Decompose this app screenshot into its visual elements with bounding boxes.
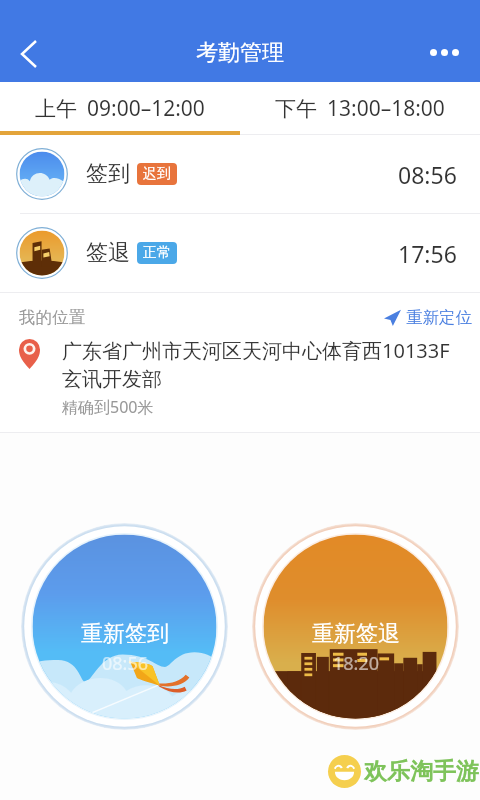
- staticText: 我的位置: [19, 307, 85, 328]
- staticText: 重新签到: [81, 620, 169, 648]
- staticText: 08:56: [398, 159, 457, 190]
- staticText: 重新定位: [406, 307, 472, 328]
- staticText: 正常: [143, 244, 171, 262]
- staticText: 迟到: [143, 165, 171, 183]
- staticText: 广东省广州市天河区天河中心体育西10133F 玄讯开发部: [62, 337, 450, 392]
- button[interactable]: 签退: [0, 214, 480, 292]
- staticText: 签退: [86, 239, 130, 267]
- staticText: 13:00–18:00: [327, 94, 445, 123]
- staticText: 上午: [35, 96, 77, 122]
- button[interactable]: 下午: [240, 82, 480, 135]
- button[interactable]: 上午: [0, 82, 240, 135]
- staticText: 重新签退: [312, 620, 400, 648]
- button[interactable]: 签到: [0, 135, 480, 213]
- button[interactable]: 重新签到: [21, 523, 228, 730]
- staticText: 精确到500米: [62, 396, 154, 418]
- staticText: 17:56: [398, 238, 457, 269]
- staticText: 08:56: [102, 651, 149, 676]
- button[interactable]: More options: [424, 23, 480, 82]
- staticText: 09:00–12:00: [87, 94, 205, 123]
- staticText: 考勤管理: [196, 39, 284, 67]
- staticText: 欢乐淘手游: [364, 757, 479, 786]
- button[interactable]: 重新定位: [384, 304, 472, 331]
- staticText: 18:20: [333, 651, 380, 676]
- staticText: 下午: [275, 96, 317, 122]
- button[interactable]: 重新签退: [252, 523, 459, 730]
- staticText: 签到: [86, 160, 130, 188]
- button[interactable]: Back: [0, 23, 56, 82]
